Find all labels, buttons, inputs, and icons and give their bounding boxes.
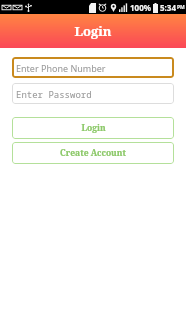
staticText: 5:34 [160, 2, 176, 13]
button[interactable]: Enter Phone Number [12, 57, 174, 78]
staticText: 100% [130, 2, 151, 13]
button[interactable]: Create Account [12, 142, 174, 164]
staticText: Enter Password [16, 88, 92, 100]
staticText: Enter Phone Number [16, 62, 106, 74]
staticText: Create Account [60, 147, 126, 159]
button[interactable]: Enter Password [12, 83, 174, 104]
staticText: Login [74, 22, 112, 40]
staticText: PM [177, 4, 185, 11]
staticText: Login [81, 122, 106, 134]
button[interactable]: Login [12, 117, 174, 139]
